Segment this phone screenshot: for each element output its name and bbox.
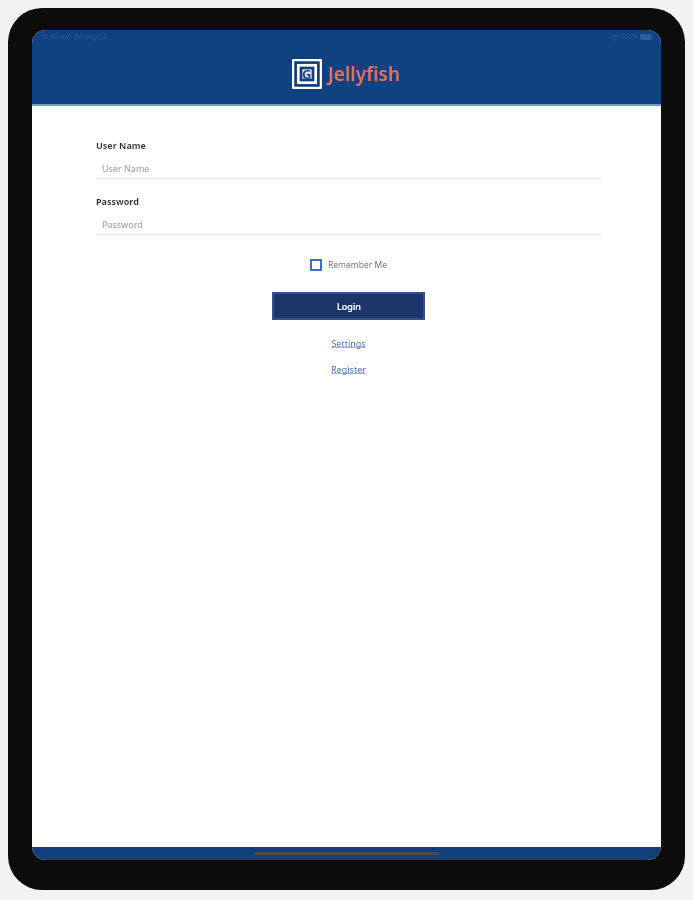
button[interactable]: Login: [272, 292, 425, 320]
staticText: Password: [102, 218, 143, 230]
staticText: Jellyfish: [328, 61, 401, 87]
staticText: Remember Me: [328, 259, 388, 271]
button[interactable]: User Name: [96, 161, 601, 179]
staticText: Register: [331, 363, 366, 375]
staticText: User Name: [96, 139, 146, 151]
button[interactable]: Settings: [325, 335, 372, 351]
button[interactable]: Register: [325, 361, 372, 377]
button[interactable]: Password: [96, 217, 601, 235]
staticText: Settings: [331, 337, 366, 349]
staticText: 100%: [620, 32, 638, 42]
staticText: 10:40 AM Fri Sep 13: [40, 32, 107, 42]
button[interactable]: Remember Me: [308, 257, 390, 273]
staticText: User Name: [102, 162, 150, 174]
staticText: Login: [337, 300, 361, 312]
staticText: G: [302, 65, 312, 83]
staticText: Password: [96, 195, 139, 207]
